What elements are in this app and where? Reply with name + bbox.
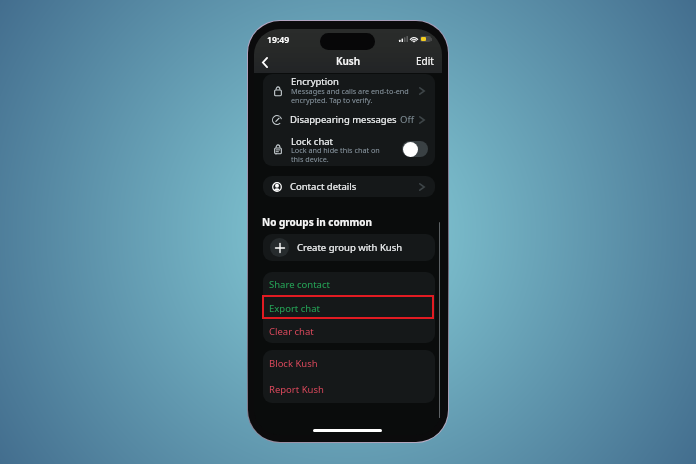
button[interactable]: Block Kush <box>263 350 435 376</box>
button[interactable]: Contact details <box>263 176 435 197</box>
staticText: Edit <box>416 54 434 68</box>
button[interactable]: Encryption <box>273 74 425 108</box>
button[interactable]: Create group with Kush <box>263 234 435 261</box>
staticText: Encryption <box>291 75 339 88</box>
staticText: Clear chat <box>269 325 314 338</box>
staticText: Disappearing messages <box>290 113 397 126</box>
button[interactable]: Disappearing messages <box>272 108 425 131</box>
staticText: Contact details <box>290 180 357 193</box>
button[interactable]: Lock chat <box>273 131 428 166</box>
button[interactable]: Lock chat toggle <box>402 141 428 157</box>
staticText: Export chat <box>269 302 320 315</box>
staticText: Block Kush <box>269 357 318 370</box>
button[interactable]: Report Kush <box>263 376 435 402</box>
staticText: Create group with Kush <box>297 241 403 254</box>
staticText: Share contact <box>269 278 330 291</box>
staticText: 19:49 <box>267 34 290 46</box>
staticText: Messages and calls are end-to-end encryp… <box>291 86 409 105</box>
button[interactable]: Share contact <box>263 272 435 296</box>
button[interactable]: Export chat <box>263 296 435 320</box>
button[interactable]: Clear chat <box>263 320 435 343</box>
staticText: Kush <box>336 54 361 68</box>
staticText: Lock and hide this chat on this device. <box>291 145 380 164</box>
staticText: Off <box>400 113 414 126</box>
staticText: Lock chat <box>291 135 334 148</box>
button[interactable]: Edit <box>416 54 434 68</box>
staticText: Report Kush <box>269 383 324 396</box>
button[interactable]: Back <box>254 51 276 73</box>
staticText: No groups in common <box>262 215 373 229</box>
